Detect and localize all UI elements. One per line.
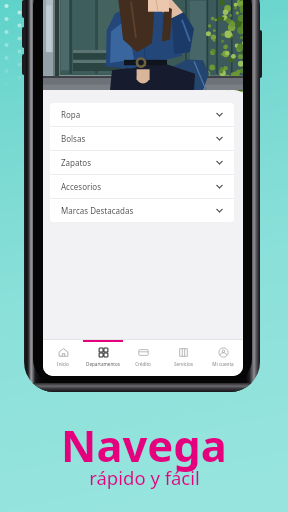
button[interactable]: Inicio bbox=[43, 340, 83, 376]
button[interactable]: Crédito bbox=[123, 340, 163, 376]
button[interactable]: Accesorios bbox=[50, 175, 234, 198]
staticText: Servicios bbox=[174, 361, 193, 367]
staticText: rápido y fácil bbox=[89, 465, 200, 490]
staticText: Crédito bbox=[135, 361, 151, 367]
staticText: Zapatos bbox=[61, 157, 92, 168]
staticText: Departamentos bbox=[86, 361, 120, 367]
staticText: Navega bbox=[61, 415, 227, 474]
button[interactable]: Marcas Destacadas bbox=[50, 199, 234, 222]
staticText: Inicio bbox=[57, 361, 69, 367]
staticText: Accesorios bbox=[61, 181, 102, 192]
staticText: Marcas Destacadas bbox=[61, 205, 134, 216]
staticText: Mi cuenta bbox=[212, 361, 234, 367]
button[interactable]: Ropa bbox=[50, 103, 234, 126]
staticText: Bolsas bbox=[61, 133, 86, 144]
button[interactable]: Servicios bbox=[163, 340, 203, 376]
button[interactable]: Zapatos bbox=[50, 151, 234, 174]
button[interactable]: Bolsas bbox=[50, 127, 234, 150]
staticText: Ropa bbox=[61, 109, 81, 120]
button[interactable]: Departamentos bbox=[83, 340, 123, 376]
button[interactable]: Mi cuenta bbox=[203, 340, 243, 376]
